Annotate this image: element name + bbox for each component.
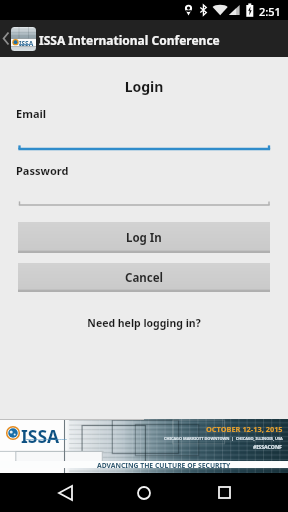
button[interactable]: Log In [18, 222, 270, 253]
button[interactable]: Home [124, 473, 164, 512]
button[interactable]: Back [45, 473, 85, 512]
button[interactable]: Need help logging in? [0, 316, 288, 330]
staticText: CHICAGO MARRIOTT DOWNTOWN | CHICAGO, ILL… [164, 436, 283, 441]
staticText: Login [0, 77, 288, 96]
staticText: #ISSACONF [253, 443, 282, 450]
staticText: ISSA [21, 424, 60, 448]
staticText: Password [16, 163, 69, 178]
staticText: Log In [126, 230, 162, 246]
staticText: OCTOBER 12-13, 2015 [206, 424, 283, 434]
staticText: Cancel [125, 270, 163, 286]
button[interactable]: Recent apps [204, 473, 244, 512]
staticText: ISSA International Conference [39, 32, 220, 48]
staticText: 2:51 [259, 4, 281, 19]
staticText: INFORMATION SYSTEMS SECURITY ASSOCIATION [26, 438, 67, 440]
staticText: Email [16, 106, 47, 121]
button[interactable]: Navigate up [0, 20, 11, 57]
button[interactable]: Cancel [18, 263, 270, 292]
staticText: ISSA [19, 39, 34, 48]
staticText: ADVANCING THE CULTURE OF SECURITY [97, 461, 231, 470]
